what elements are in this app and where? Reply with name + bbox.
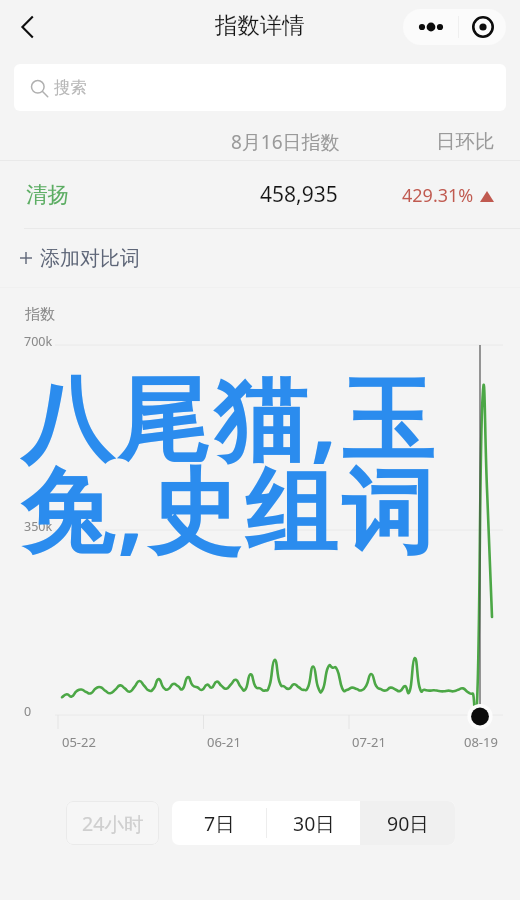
button[interactable]: 搜索 — [14, 64, 506, 111]
staticText: 指数详情 — [215, 11, 305, 39]
staticText: 0 — [24, 703, 32, 720]
staticText: 08-19 — [464, 733, 498, 751]
button[interactable]: 30日 — [267, 801, 360, 845]
button[interactable]: 90日 — [360, 801, 455, 845]
staticText: 05-22 — [62, 733, 96, 751]
staticText: 指数 — [25, 305, 55, 324]
staticText: 429.31% — [402, 183, 474, 208]
button[interactable]: More options and close — [403, 9, 506, 45]
staticText: 清扬 — [26, 181, 69, 208]
staticText: 700k — [24, 333, 53, 350]
button[interactable]: Back — [6, 6, 48, 48]
staticText: 搜索 — [54, 77, 87, 98]
button[interactable]: 清扬 — [0, 161, 520, 228]
staticText: 8月16日指数 — [231, 129, 340, 155]
staticText: 06-21 — [207, 733, 241, 751]
staticText: 458,935 — [260, 180, 338, 209]
button[interactable]: 24小时 — [66, 801, 159, 845]
staticText: 日环比 — [436, 129, 495, 154]
staticText: 兔,史组词 — [21, 446, 439, 572]
staticText: 24小时 — [82, 810, 144, 837]
staticText: 30日 — [293, 810, 335, 837]
staticText: 添加对比词 — [40, 246, 140, 271]
button[interactable]: 添加对比词 — [0, 229, 520, 287]
staticText: 90日 — [387, 810, 429, 837]
staticText: 350k — [24, 518, 53, 535]
staticText: 7日 — [204, 810, 235, 837]
staticText: 07-21 — [352, 733, 386, 751]
staticText: 八尾猫,玉 — [21, 354, 439, 480]
button[interactable]: 7日 — [172, 801, 266, 845]
